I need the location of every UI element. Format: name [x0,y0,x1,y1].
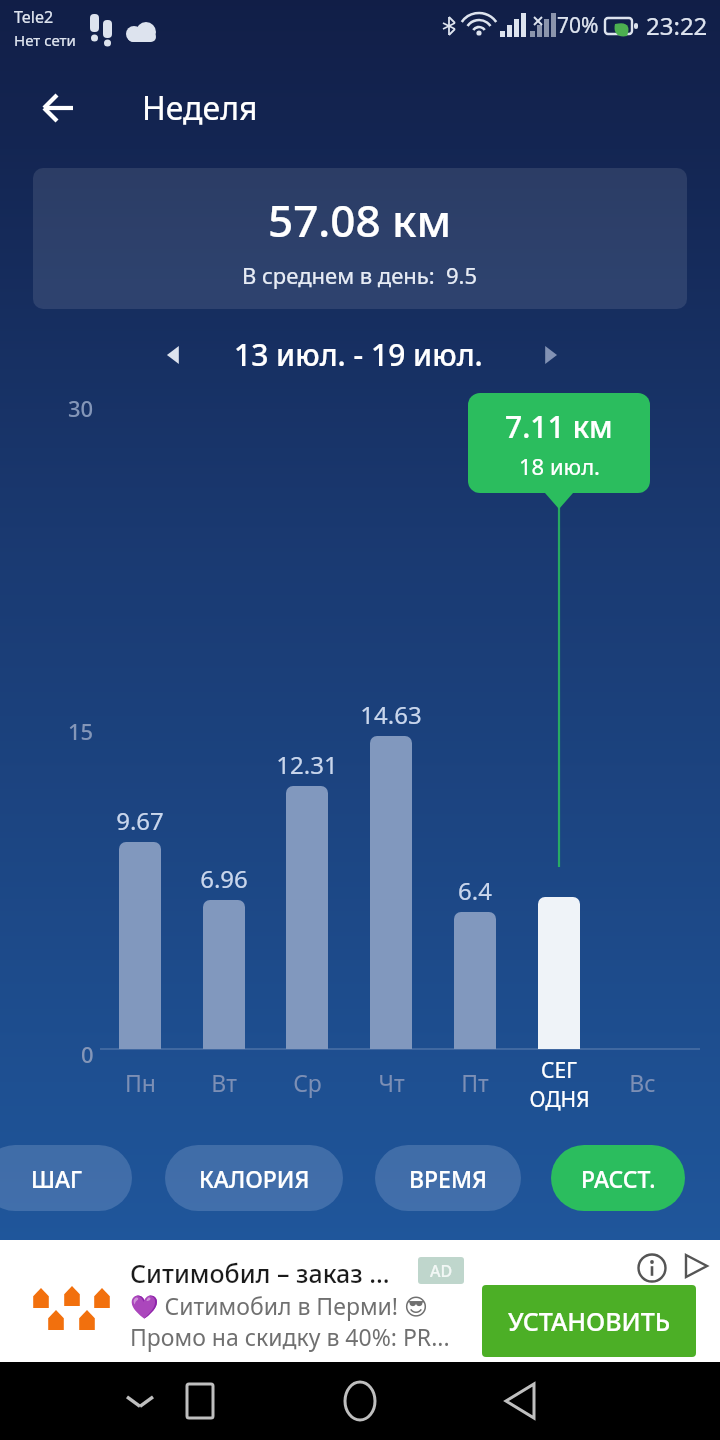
button[interactable] [203,900,245,1049]
staticText: РАССТ. [581,1163,656,1194]
staticText: 9.67 [116,804,164,836]
button[interactable]: Ad info [630,1246,674,1290]
staticText: 12.31 [276,748,338,780]
staticText: Ср [293,1067,322,1098]
button[interactable]: РАССТ. [551,1145,685,1211]
staticText: 70% [557,11,599,40]
staticText: Неделя [142,86,258,130]
staticText: AD [430,1260,453,1282]
staticText: 23:22 [646,9,708,42]
staticText: 15 [68,716,94,746]
staticText: 💜 Ситимобил в Перми! 😎 [130,1290,428,1321]
button[interactable]: 57.08 км [33,168,687,309]
button[interactable]: Home [310,1362,410,1440]
button[interactable]: AdChoices [676,1246,716,1286]
staticText: Tele2 [14,6,54,28]
button[interactable]: КАЛОРИЯ [165,1145,343,1211]
staticText: В среднем в день: 9.5 [242,260,478,290]
staticText: 30 [68,393,94,423]
staticText: СЕГ [541,1056,577,1085]
button[interactable] [286,786,328,1049]
staticText: 14.63 [360,698,422,730]
staticText: КАЛОРИЯ [199,1163,310,1194]
button[interactable]: ШАГ [0,1145,132,1211]
button[interactable] [119,842,161,1049]
staticText: 6.4 [458,874,492,906]
staticText: 6.96 [200,862,248,894]
button[interactable]: Previous week [148,327,200,382]
staticText: Нет сети [14,30,76,50]
button[interactable]: Back [24,66,92,150]
button[interactable]: 7.11 км [468,393,650,493]
button[interactable] [454,912,496,1049]
staticText: ШАГ [31,1163,83,1194]
staticText: 57.08 км [268,190,452,250]
staticText: 0 [81,1039,94,1069]
staticText: Вт [211,1067,237,1098]
staticText: ОДНЯ [529,1085,590,1114]
button[interactable] [538,897,580,1049]
button[interactable]: Back [470,1362,570,1440]
staticText: УСТАНОВИТЬ [508,1304,671,1338]
button[interactable]: Ситимобил – заказ ... [0,1240,720,1362]
button[interactable]: ВРЕМЯ [375,1145,521,1211]
staticText: Пн [125,1067,156,1098]
staticText: Пт [461,1067,489,1098]
staticText: ВРЕМЯ [409,1163,487,1194]
staticText: Чт [378,1067,405,1098]
staticText: Вс [629,1067,656,1098]
button[interactable]: Next week [524,327,576,382]
staticText: 18 июл. [519,451,600,481]
button[interactable] [370,736,412,1049]
staticText: 7.11 км [505,406,613,447]
button[interactable]: Recent apps [150,1362,250,1440]
button[interactable]: УСТАНОВИТЬ [482,1285,696,1357]
button[interactable]: Hide keyboard [90,1362,190,1440]
staticText: 13 июл. - 19 июл. [234,334,483,375]
staticText: Промо на скидку в 40%: PR... [130,1321,450,1352]
staticText: Ситимобил – заказ ... [130,1256,390,1290]
